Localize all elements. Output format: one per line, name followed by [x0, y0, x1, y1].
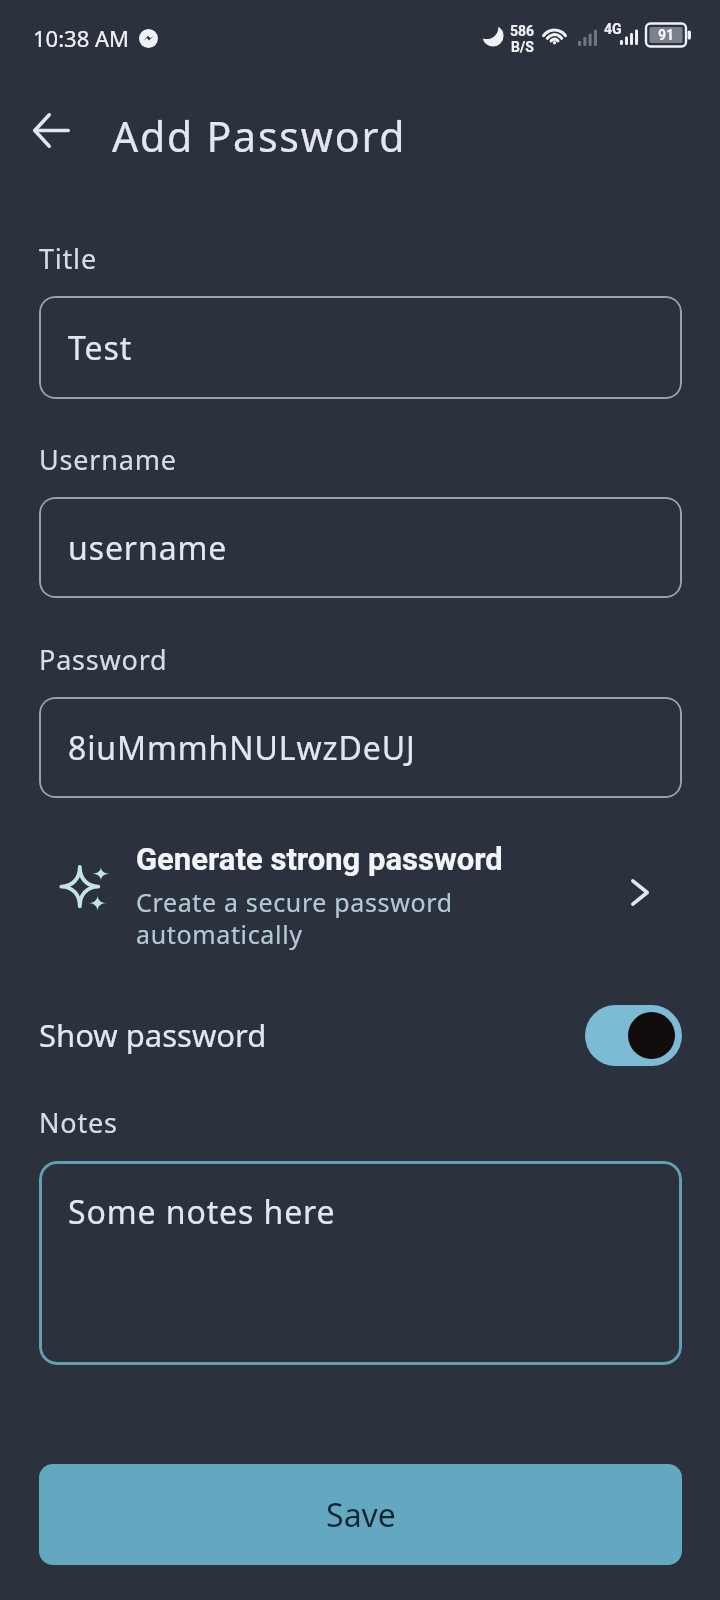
staticText: Username	[39, 441, 177, 478]
button[interactable]: Back	[18, 97, 84, 163]
staticText: Some notes here	[68, 1190, 336, 1234]
staticText: 91	[658, 27, 675, 43]
staticText: Save	[326, 1493, 396, 1537]
button[interactable]: 8iuMmmhNULwzDeUJ	[39, 697, 682, 798]
staticText: 8iuMmmhNULwzDeUJ	[68, 726, 416, 770]
staticText: Title	[39, 240, 97, 277]
staticText: 4G	[604, 21, 622, 37]
staticText: Generate strong password	[136, 841, 503, 877]
staticText: 586	[510, 23, 535, 39]
staticText: Notes	[39, 1104, 118, 1141]
staticText: username	[68, 526, 228, 570]
staticText: Test	[68, 326, 133, 370]
button[interactable]: Show password	[0, 991, 720, 1079]
staticText: Create a secure password automatically	[136, 885, 516, 951]
staticText: 10:38 AM	[33, 23, 129, 53]
button[interactable]: Save	[39, 1464, 682, 1565]
staticText: Add Password	[112, 108, 407, 164]
button[interactable]: Some notes here	[39, 1161, 682, 1365]
staticText: Show password	[39, 1014, 267, 1056]
staticText: Password	[39, 641, 168, 678]
button[interactable]: Generate strong password	[0, 826, 720, 960]
staticText: B/S	[511, 39, 534, 55]
button[interactable]: Test	[39, 296, 682, 399]
button[interactable]: Show password toggle, on	[585, 1005, 682, 1066]
button[interactable]: username	[39, 497, 682, 598]
